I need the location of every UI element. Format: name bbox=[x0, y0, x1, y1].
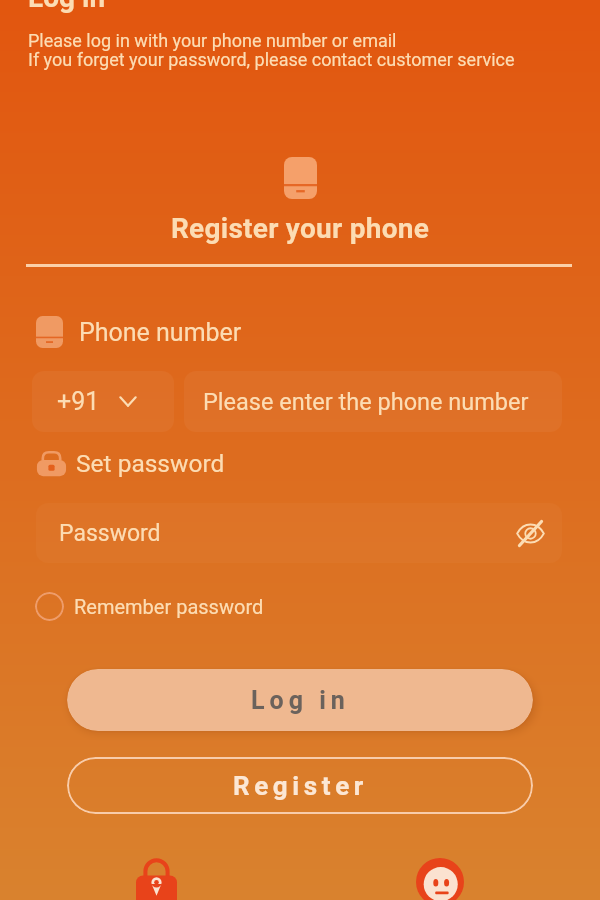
button[interactable]: Show password bbox=[510, 513, 550, 553]
staticText: Set password bbox=[76, 449, 225, 478]
button[interactable]: Password bbox=[36, 503, 562, 563]
button[interactable]: Please enter the phone number bbox=[184, 371, 562, 432]
staticText: Password bbox=[59, 520, 161, 547]
staticText: Remember password bbox=[74, 595, 264, 618]
staticText: Log in bbox=[251, 686, 350, 715]
staticText: Please log in with your phone number or … bbox=[28, 30, 397, 51]
button[interactable]: Forgot password bbox=[136, 857, 177, 900]
button[interactable]: Customer service bbox=[416, 858, 464, 900]
button[interactable]: Remember password bbox=[35, 591, 264, 621]
staticText: Log in bbox=[28, 0, 106, 14]
staticText: Please enter the phone number bbox=[203, 388, 529, 416]
staticText: If you forget your password, please cont… bbox=[28, 49, 515, 70]
button[interactable]: +91 bbox=[32, 371, 174, 432]
staticText: Register your phone bbox=[0, 212, 600, 245]
staticText: Phone number bbox=[79, 318, 242, 347]
staticText: Register bbox=[233, 771, 368, 801]
staticText: +91 bbox=[57, 387, 100, 416]
button[interactable]: Register bbox=[67, 757, 533, 814]
button[interactable]: Log in bbox=[67, 669, 533, 731]
